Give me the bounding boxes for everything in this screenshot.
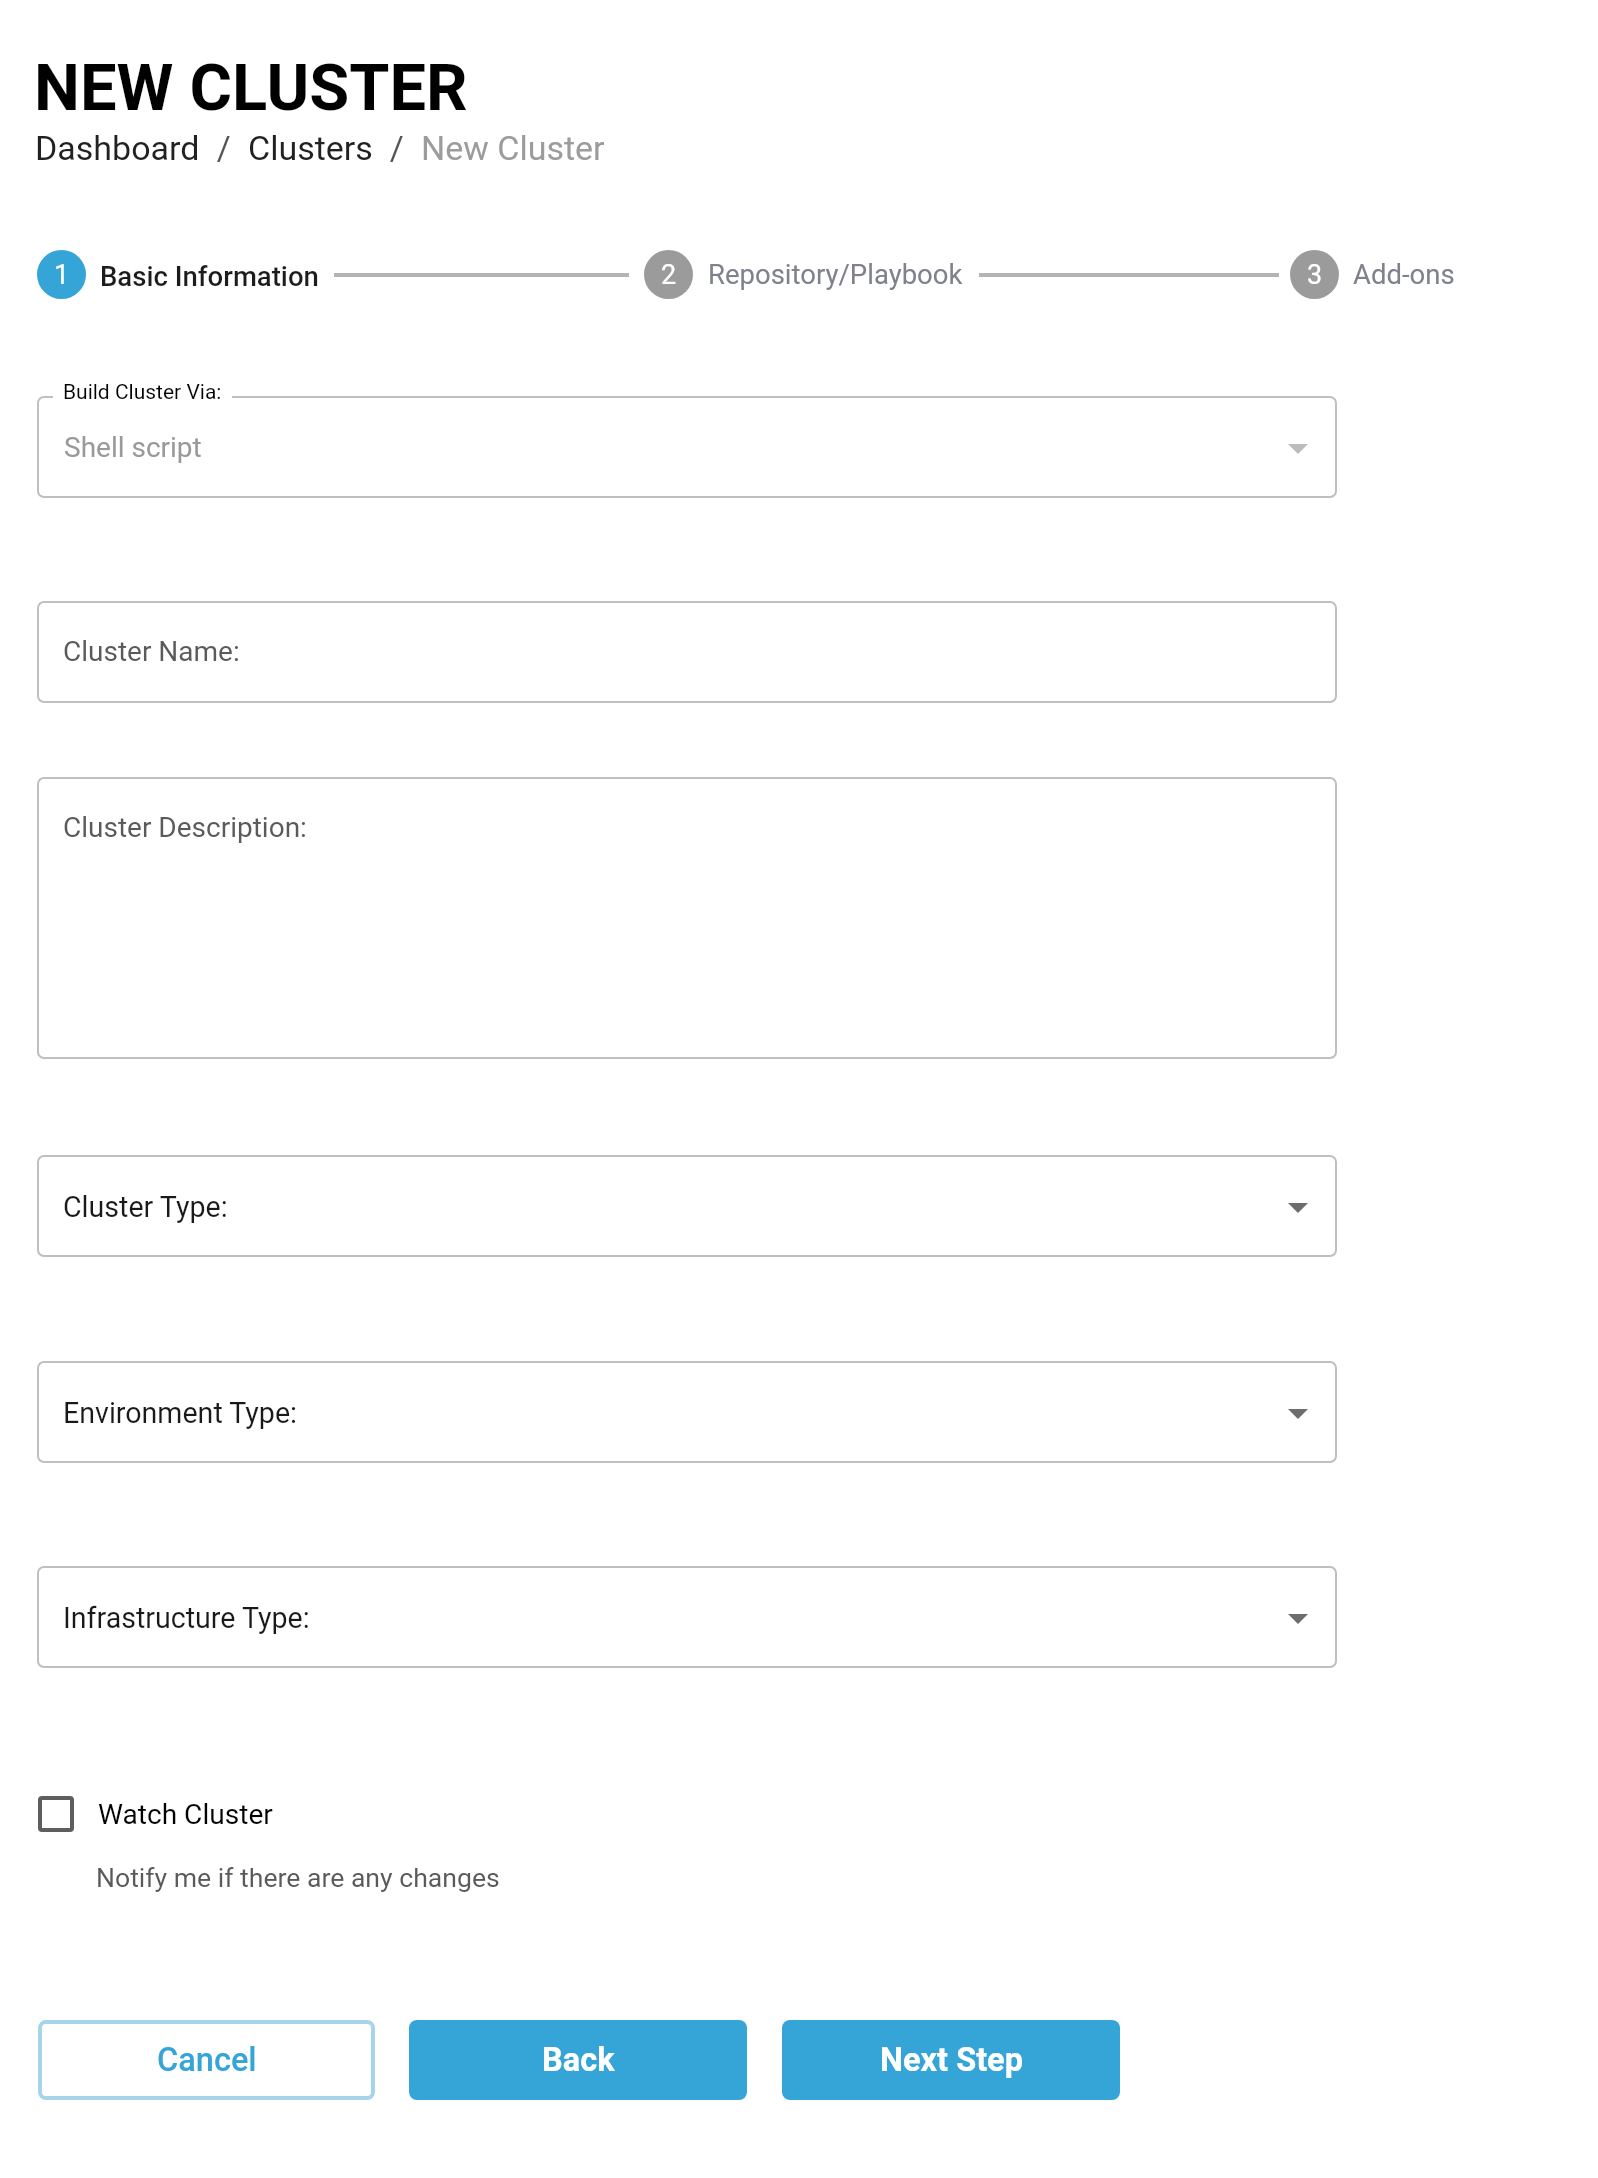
button[interactable]: Cancel	[38, 2020, 375, 2100]
staticText: /	[200, 128, 248, 168]
button[interactable]: Cluster Description:	[37, 777, 1337, 1059]
staticText: /	[373, 128, 421, 168]
other: Open Cluster Type: options	[1288, 1203, 1308, 1213]
staticText: Cluster Type:	[63, 1190, 228, 1224]
staticText: Notify me if there are any changes	[96, 1862, 500, 1893]
staticText: Back	[542, 2041, 615, 2079]
staticText: Basic Information	[100, 260, 319, 292]
staticText: New Cluster	[421, 128, 605, 168]
staticText: 2	[661, 259, 677, 291]
button[interactable]: 2	[644, 250, 962, 299]
button[interactable]: Cluster Name:	[37, 601, 1337, 703]
button[interactable]: 3	[1290, 250, 1460, 299]
button[interactable]: Cluster Type:	[37, 1155, 1337, 1257]
other: Open Infrastructure Type: options	[1288, 1614, 1308, 1624]
staticText: Add-ons	[1353, 258, 1455, 290]
staticText: Cancel	[157, 2041, 257, 2079]
staticText: NEW CLUSTER	[34, 50, 468, 126]
button[interactable]: Next Step	[782, 2020, 1120, 2100]
other: Open build cluster via options	[1288, 444, 1308, 454]
button[interactable]: Watch Cluster	[38, 1796, 273, 1832]
staticText: Cluster Description:	[63, 811, 307, 844]
staticText: 1	[54, 259, 70, 291]
button[interactable]: Infrastructure Type:	[37, 1566, 1337, 1668]
other: Open Environment Type: options	[1288, 1409, 1308, 1419]
staticText: Watch Cluster	[98, 1798, 273, 1831]
button[interactable]: Environment Type:	[37, 1361, 1337, 1463]
staticText: Cluster Name:	[63, 635, 240, 668]
staticText: Infrastructure Type:	[63, 1601, 310, 1635]
staticText: Environment Type:	[63, 1396, 297, 1430]
staticText: Next Step	[880, 2041, 1023, 2079]
staticText: Build Cluster Via:	[63, 380, 222, 400]
button[interactable]: Dashboard	[35, 128, 200, 168]
staticText: Repository/Playbook	[708, 258, 963, 290]
staticText: 3	[1307, 259, 1323, 291]
staticText: Shell script	[64, 431, 202, 464]
button[interactable]: Shell script	[37, 396, 1337, 498]
button[interactable]: Clusters	[248, 128, 373, 168]
button[interactable]: Back	[409, 2020, 747, 2100]
button[interactable]: 1	[37, 250, 315, 299]
